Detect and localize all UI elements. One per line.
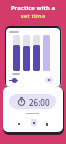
button[interactable]: Option — [45, 77, 53, 83]
button[interactable]: Slider — [12, 78, 17, 83]
staticText: 26:00 — [29, 97, 50, 108]
button[interactable]: 26:00 — [9, 94, 56, 109]
staticText: Practice with a — [0, 4, 66, 12]
button[interactable]: Start — [31, 119, 37, 126]
staticText: set time — [0, 12, 66, 20]
